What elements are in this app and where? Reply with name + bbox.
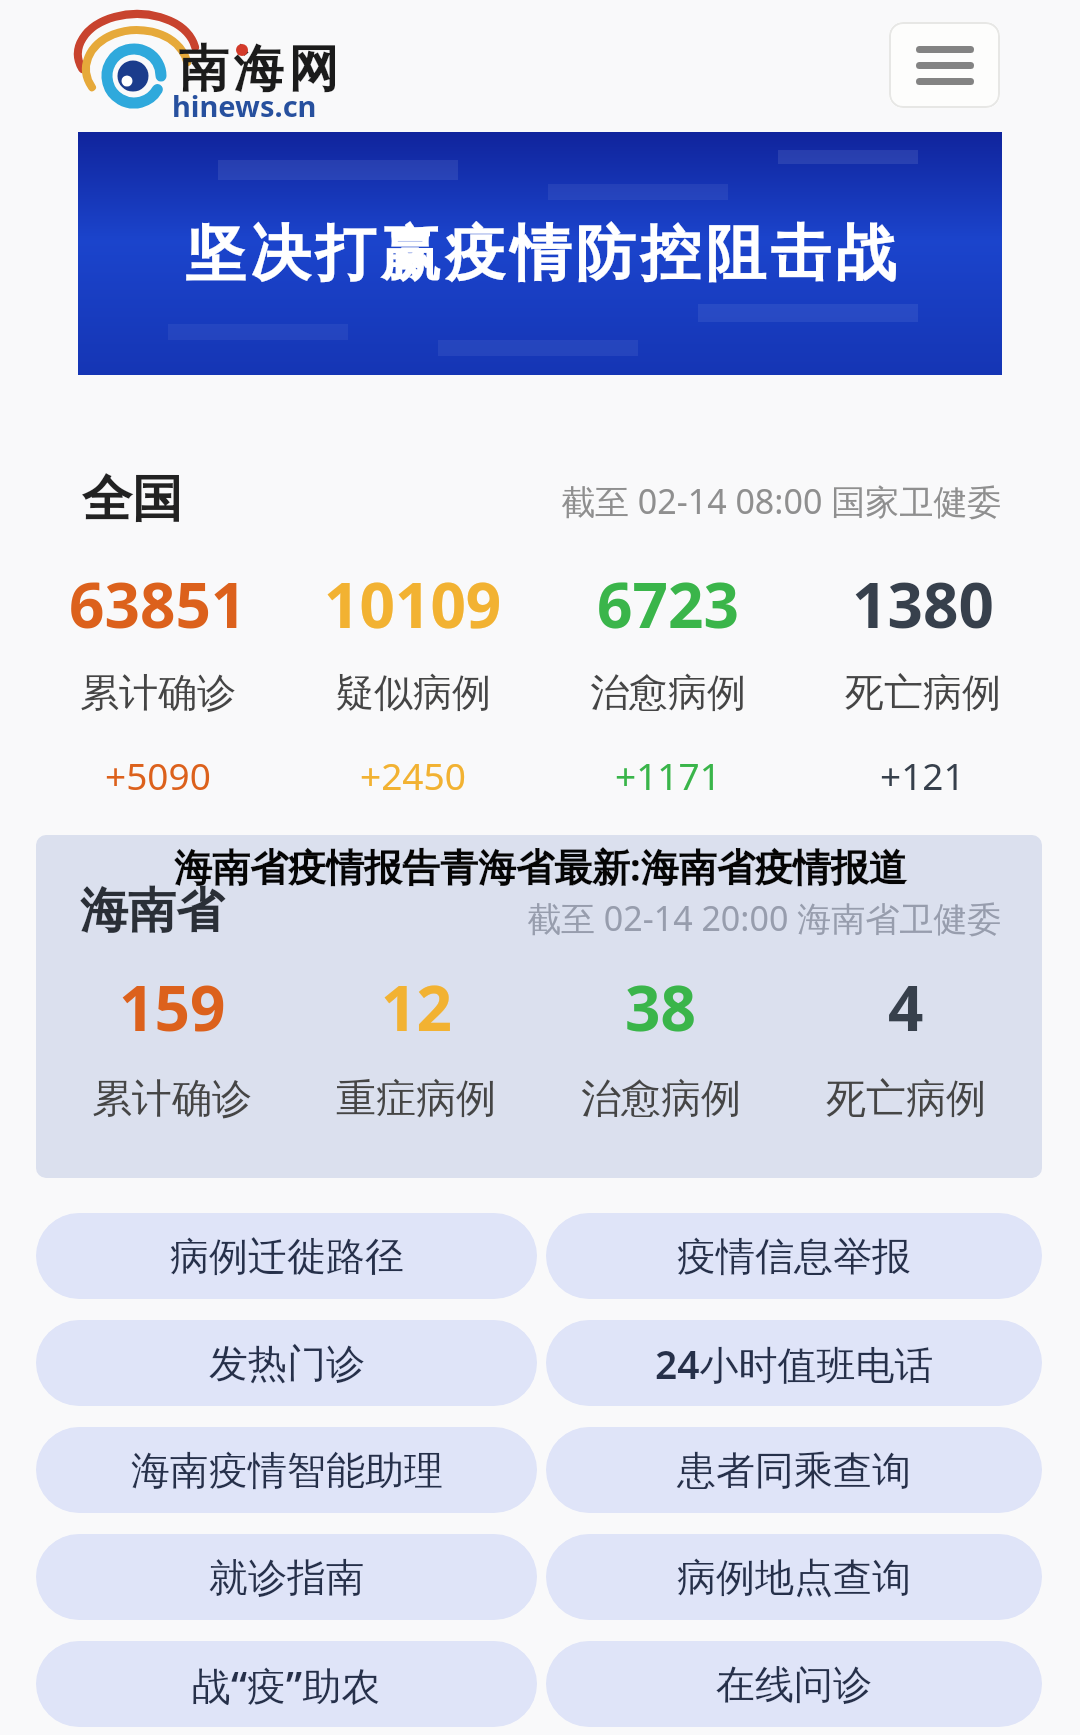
staticText: 疫情信息举报: [677, 1232, 911, 1281]
staticText: 患者同乘查询: [677, 1446, 911, 1495]
staticText: 坚决打赢疫情防控阻击战: [183, 216, 898, 292]
staticText: +2450: [360, 750, 466, 800]
staticText: 4: [888, 965, 924, 1049]
button[interactable]: 疫情信息举报: [546, 1213, 1042, 1299]
staticText: 在线问诊: [716, 1660, 872, 1709]
staticText: 10109: [324, 562, 502, 646]
staticText: 治愈病例: [581, 1073, 741, 1123]
staticText: 全国: [82, 468, 182, 531]
button[interactable]: 海南疫情智能助理: [36, 1427, 537, 1513]
staticText: 死亡病例: [826, 1073, 986, 1123]
staticText: +1171: [615, 750, 721, 800]
button[interactable]: [889, 22, 1000, 108]
staticText: 累计确诊: [92, 1073, 252, 1123]
button[interactable]: 就诊指南: [36, 1534, 537, 1620]
staticText: 63851: [69, 562, 247, 646]
staticText: 病例地点查询: [677, 1553, 911, 1602]
button[interactable]: 患者同乘查询: [546, 1427, 1042, 1513]
staticText: 海南省: [80, 881, 224, 941]
button[interactable]: 坚决打赢疫情防控阻击战: [78, 132, 1002, 375]
staticText: 病例迁徙路径: [170, 1232, 404, 1281]
staticText: 重症病例: [336, 1073, 496, 1123]
staticText: 海南疫情智能助理: [131, 1446, 443, 1495]
staticText: hinews.cn: [172, 86, 317, 125]
staticText: 24小时值班电话: [655, 1337, 934, 1390]
staticText: 死亡病例: [845, 668, 1001, 717]
staticText: 159: [119, 965, 226, 1049]
staticText: 疑似病例: [335, 668, 491, 717]
staticText: 就诊指南: [209, 1553, 365, 1602]
staticText: +5090: [105, 750, 211, 800]
staticText: 6723: [597, 562, 739, 646]
staticText: 发热门诊: [209, 1339, 365, 1388]
staticText: 截至 02-14 08:00 国家卫健委: [561, 478, 1002, 524]
staticText: 1380: [852, 562, 994, 646]
button[interactable]: 病例迁徙路径: [36, 1213, 537, 1299]
staticText: 治愈病例: [590, 668, 746, 717]
staticText: 截至 02-14 20:00 海南省卫健委: [527, 895, 1002, 941]
staticText: 南海网: [176, 38, 341, 101]
staticText: 38: [625, 965, 696, 1049]
button[interactable]: 在线问诊: [546, 1641, 1042, 1727]
staticText: +121: [880, 750, 965, 800]
staticText: 12: [381, 965, 452, 1049]
staticText: 累计确诊: [80, 668, 236, 717]
button[interactable]: 发热门诊: [36, 1320, 537, 1406]
button[interactable]: 病例地点查询: [546, 1534, 1042, 1620]
button[interactable]: 24小时值班电话: [546, 1320, 1042, 1406]
staticText: 战“疫”助农: [192, 1658, 381, 1711]
button[interactable]: 战“疫”助农: [36, 1641, 537, 1727]
staticText: 海南省疫情报告青海省最新:海南省疫情报道: [174, 840, 907, 892]
